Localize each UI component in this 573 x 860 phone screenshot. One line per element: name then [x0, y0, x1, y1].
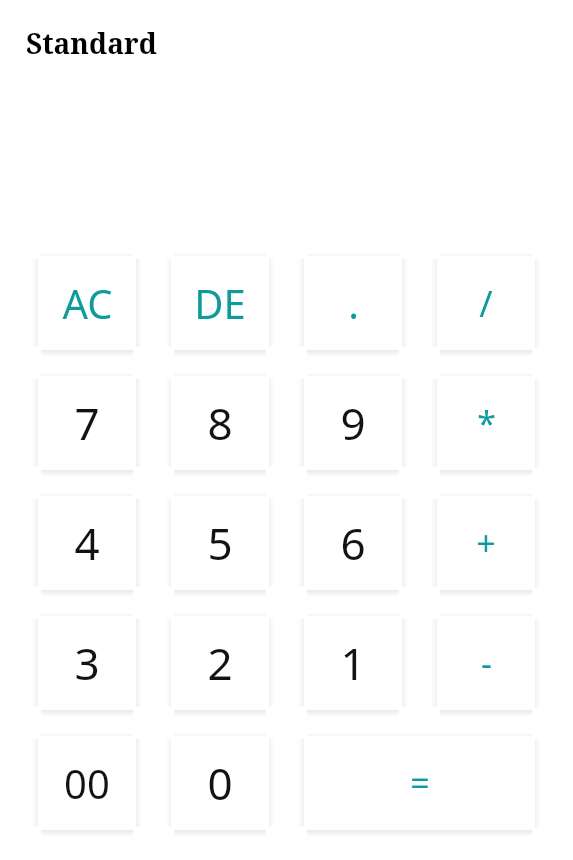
button[interactable]: 9: [304, 376, 402, 470]
button[interactable]: 8: [171, 376, 269, 470]
button[interactable]: AC: [38, 256, 136, 350]
staticText: 3: [74, 633, 100, 693]
button[interactable]: .: [304, 256, 402, 350]
staticText: /: [479, 279, 493, 328]
button[interactable]: 6: [304, 496, 402, 590]
staticText: Standard: [26, 24, 157, 62]
button[interactable]: *: [437, 376, 535, 470]
button[interactable]: /: [437, 256, 535, 350]
staticText: 9: [340, 393, 366, 453]
staticText: 8: [207, 393, 233, 453]
button[interactable]: 1: [304, 616, 402, 710]
staticText: 7: [74, 393, 100, 453]
button[interactable]: DE: [171, 256, 269, 350]
staticText: .: [348, 276, 359, 330]
button[interactable]: 5: [171, 496, 269, 590]
staticText: DE: [194, 276, 246, 330]
staticText: -: [481, 640, 492, 686]
button[interactable]: 7: [38, 376, 136, 470]
staticText: =: [410, 760, 430, 806]
staticText: 6: [340, 513, 366, 573]
button[interactable]: +: [437, 496, 535, 590]
staticText: +: [476, 520, 496, 566]
button[interactable]: 0: [171, 736, 269, 830]
button[interactable]: 00: [38, 736, 136, 830]
staticText: *: [477, 400, 496, 446]
button[interactable]: -: [437, 616, 535, 710]
staticText: 2: [207, 633, 233, 693]
staticText: 00: [64, 756, 110, 810]
button[interactable]: 2: [171, 616, 269, 710]
staticText: 1: [340, 633, 366, 693]
button[interactable]: 3: [38, 616, 136, 710]
button[interactable]: =: [304, 736, 535, 830]
staticText: 4: [74, 513, 100, 573]
staticText: AC: [62, 276, 113, 330]
staticText: 5: [207, 513, 233, 573]
button[interactable]: 4: [38, 496, 136, 590]
staticText: 0: [207, 753, 233, 813]
